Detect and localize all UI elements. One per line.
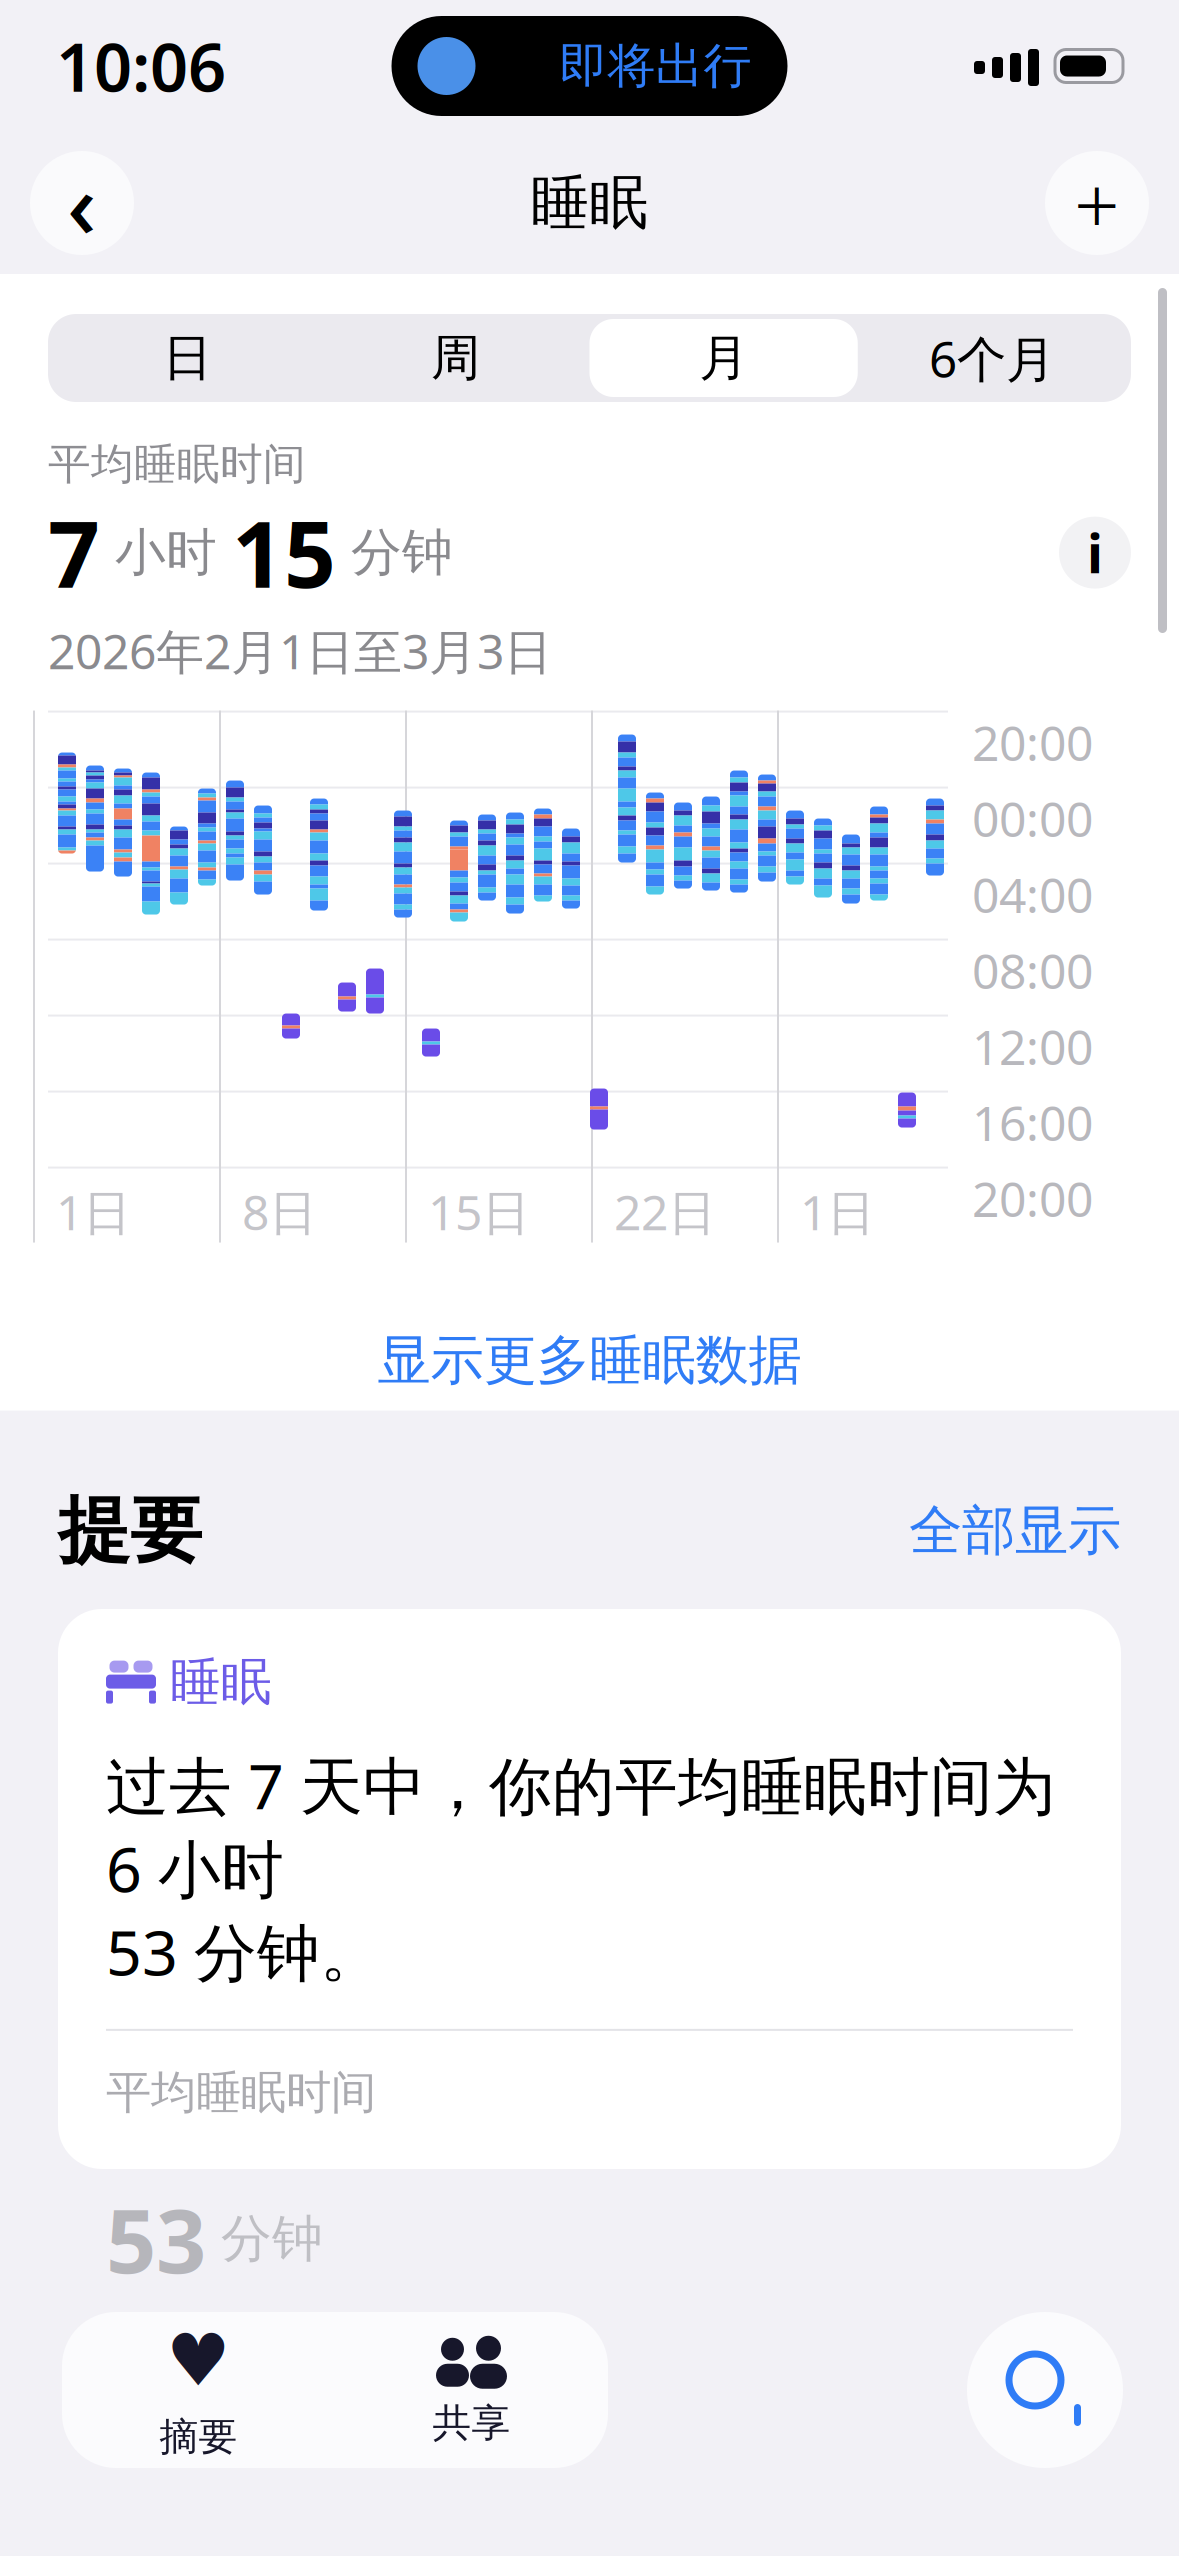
button[interactable]: 搜索 [967,2312,1123,2468]
button[interactable]: 显示更多睡眠数据 [0,1311,1179,1411]
staticText: 04:00 [972,863,1093,926]
staticText: 平均睡眠时间 [106,2065,376,2121]
staticText: 小时 [100,521,232,584]
staticText: + [1074,150,1120,256]
staticText: 1日 [800,1180,875,1243]
staticText: 日 [163,328,212,388]
staticText: ♥ [166,2319,231,2401]
button[interactable]: 信息 [1059,517,1131,589]
staticText: 全部显示 [909,1498,1121,1563]
staticText: 22日 [614,1180,716,1243]
staticText: 共享 [432,2399,510,2447]
button[interactable]: 睡眠 [58,1609,1121,2169]
button[interactable]: 全部显示 [909,1498,1121,1563]
staticText: 睡眠 [530,167,648,239]
staticText: 16:00 [972,1091,1093,1154]
staticText: 月 [699,328,748,388]
button[interactable]: ♥ [62,2312,335,2468]
staticText: 20:00 [972,1167,1093,1230]
button[interactable]: 6个月 [858,319,1126,397]
staticText: 53 [106,2181,206,2297]
staticText: 分钟 [206,2208,323,2270]
staticText: 00:00 [972,787,1093,850]
button[interactable]: 周 [321,319,589,397]
staticText: 8日 [242,1180,317,1243]
staticText: 15日 [428,1180,530,1243]
button[interactable]: 返回 [30,143,134,263]
button[interactable]: 添加 [1045,150,1149,256]
staticText: 20:00 [972,711,1093,774]
button[interactable]: 月 [589,319,858,397]
staticText: 周 [431,328,480,388]
staticText: 摘要 [159,2413,237,2461]
staticText: 1日 [56,1180,131,1243]
staticText: 平均睡眠时间 [48,438,306,490]
staticText: i [1087,517,1103,588]
button[interactable]: 共享 [335,2312,608,2468]
staticText: 2026年2月1日至3月3日 [48,619,552,682]
staticText: 10:06 [56,22,226,110]
staticText: 提要 [58,1487,202,1575]
staticText: 分钟 [336,521,453,584]
staticText: 显示更多睡眠数据 [377,1328,801,1393]
staticText: 12:00 [972,1015,1093,1078]
button[interactable]: 日 [53,319,321,397]
staticText: 睡眠 [170,1651,272,1713]
staticText: 7 [48,492,100,613]
staticText: ‹ [67,143,97,263]
staticText: 15 [232,492,336,613]
staticText: 过去 7 天中，你的平均睡眠时间为 6 小时 53 分钟。 [106,1743,1056,1993]
staticText: 08:00 [972,939,1093,1002]
staticText: 即将出行 [559,36,751,95]
staticText: 6个月 [929,325,1055,391]
